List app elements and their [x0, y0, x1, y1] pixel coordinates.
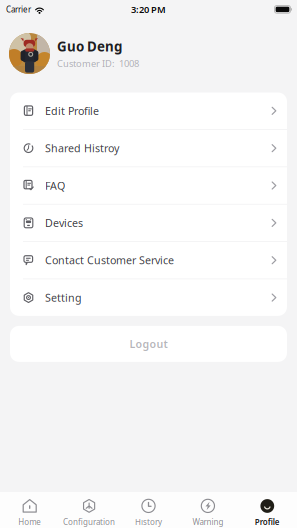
button[interactable]: Configuration [59, 499, 119, 527]
staticText: Customer ID: 1008 [57, 57, 139, 70]
button[interactable]: Shared Histroy [10, 130, 287, 167]
button[interactable]: Edit Profile [10, 92, 287, 130]
staticText: History [135, 517, 162, 527]
button[interactable]: Home [0, 499, 59, 527]
staticText: Profile [255, 517, 280, 527]
button[interactable]: Contact Customer Service [10, 242, 287, 279]
staticText: Configuration [63, 517, 115, 527]
staticText: Edit Profile [45, 104, 99, 118]
button[interactable]: History [119, 499, 178, 527]
staticText: Warning [192, 517, 223, 527]
button[interactable]: Logout [10, 326, 287, 362]
staticText: Contact Customer Service [45, 253, 174, 267]
button[interactable]: Setting [10, 279, 287, 316]
button[interactable]: Profile [238, 499, 297, 527]
staticText: FAQ [45, 178, 65, 193]
button[interactable]: Warning [178, 499, 238, 527]
staticText: Guo Deng [57, 37, 122, 55]
staticText: Shared Histroy [45, 141, 119, 155]
staticText: Carrier [6, 4, 31, 15]
staticText: Setting [45, 290, 82, 305]
staticText: Logout [129, 337, 167, 351]
staticText: Home [18, 517, 41, 527]
button[interactable]: Devices [10, 205, 287, 242]
staticText: Devices [45, 216, 83, 230]
button[interactable]: FAQ [10, 167, 287, 205]
staticText: 3:20 PM [131, 3, 166, 16]
